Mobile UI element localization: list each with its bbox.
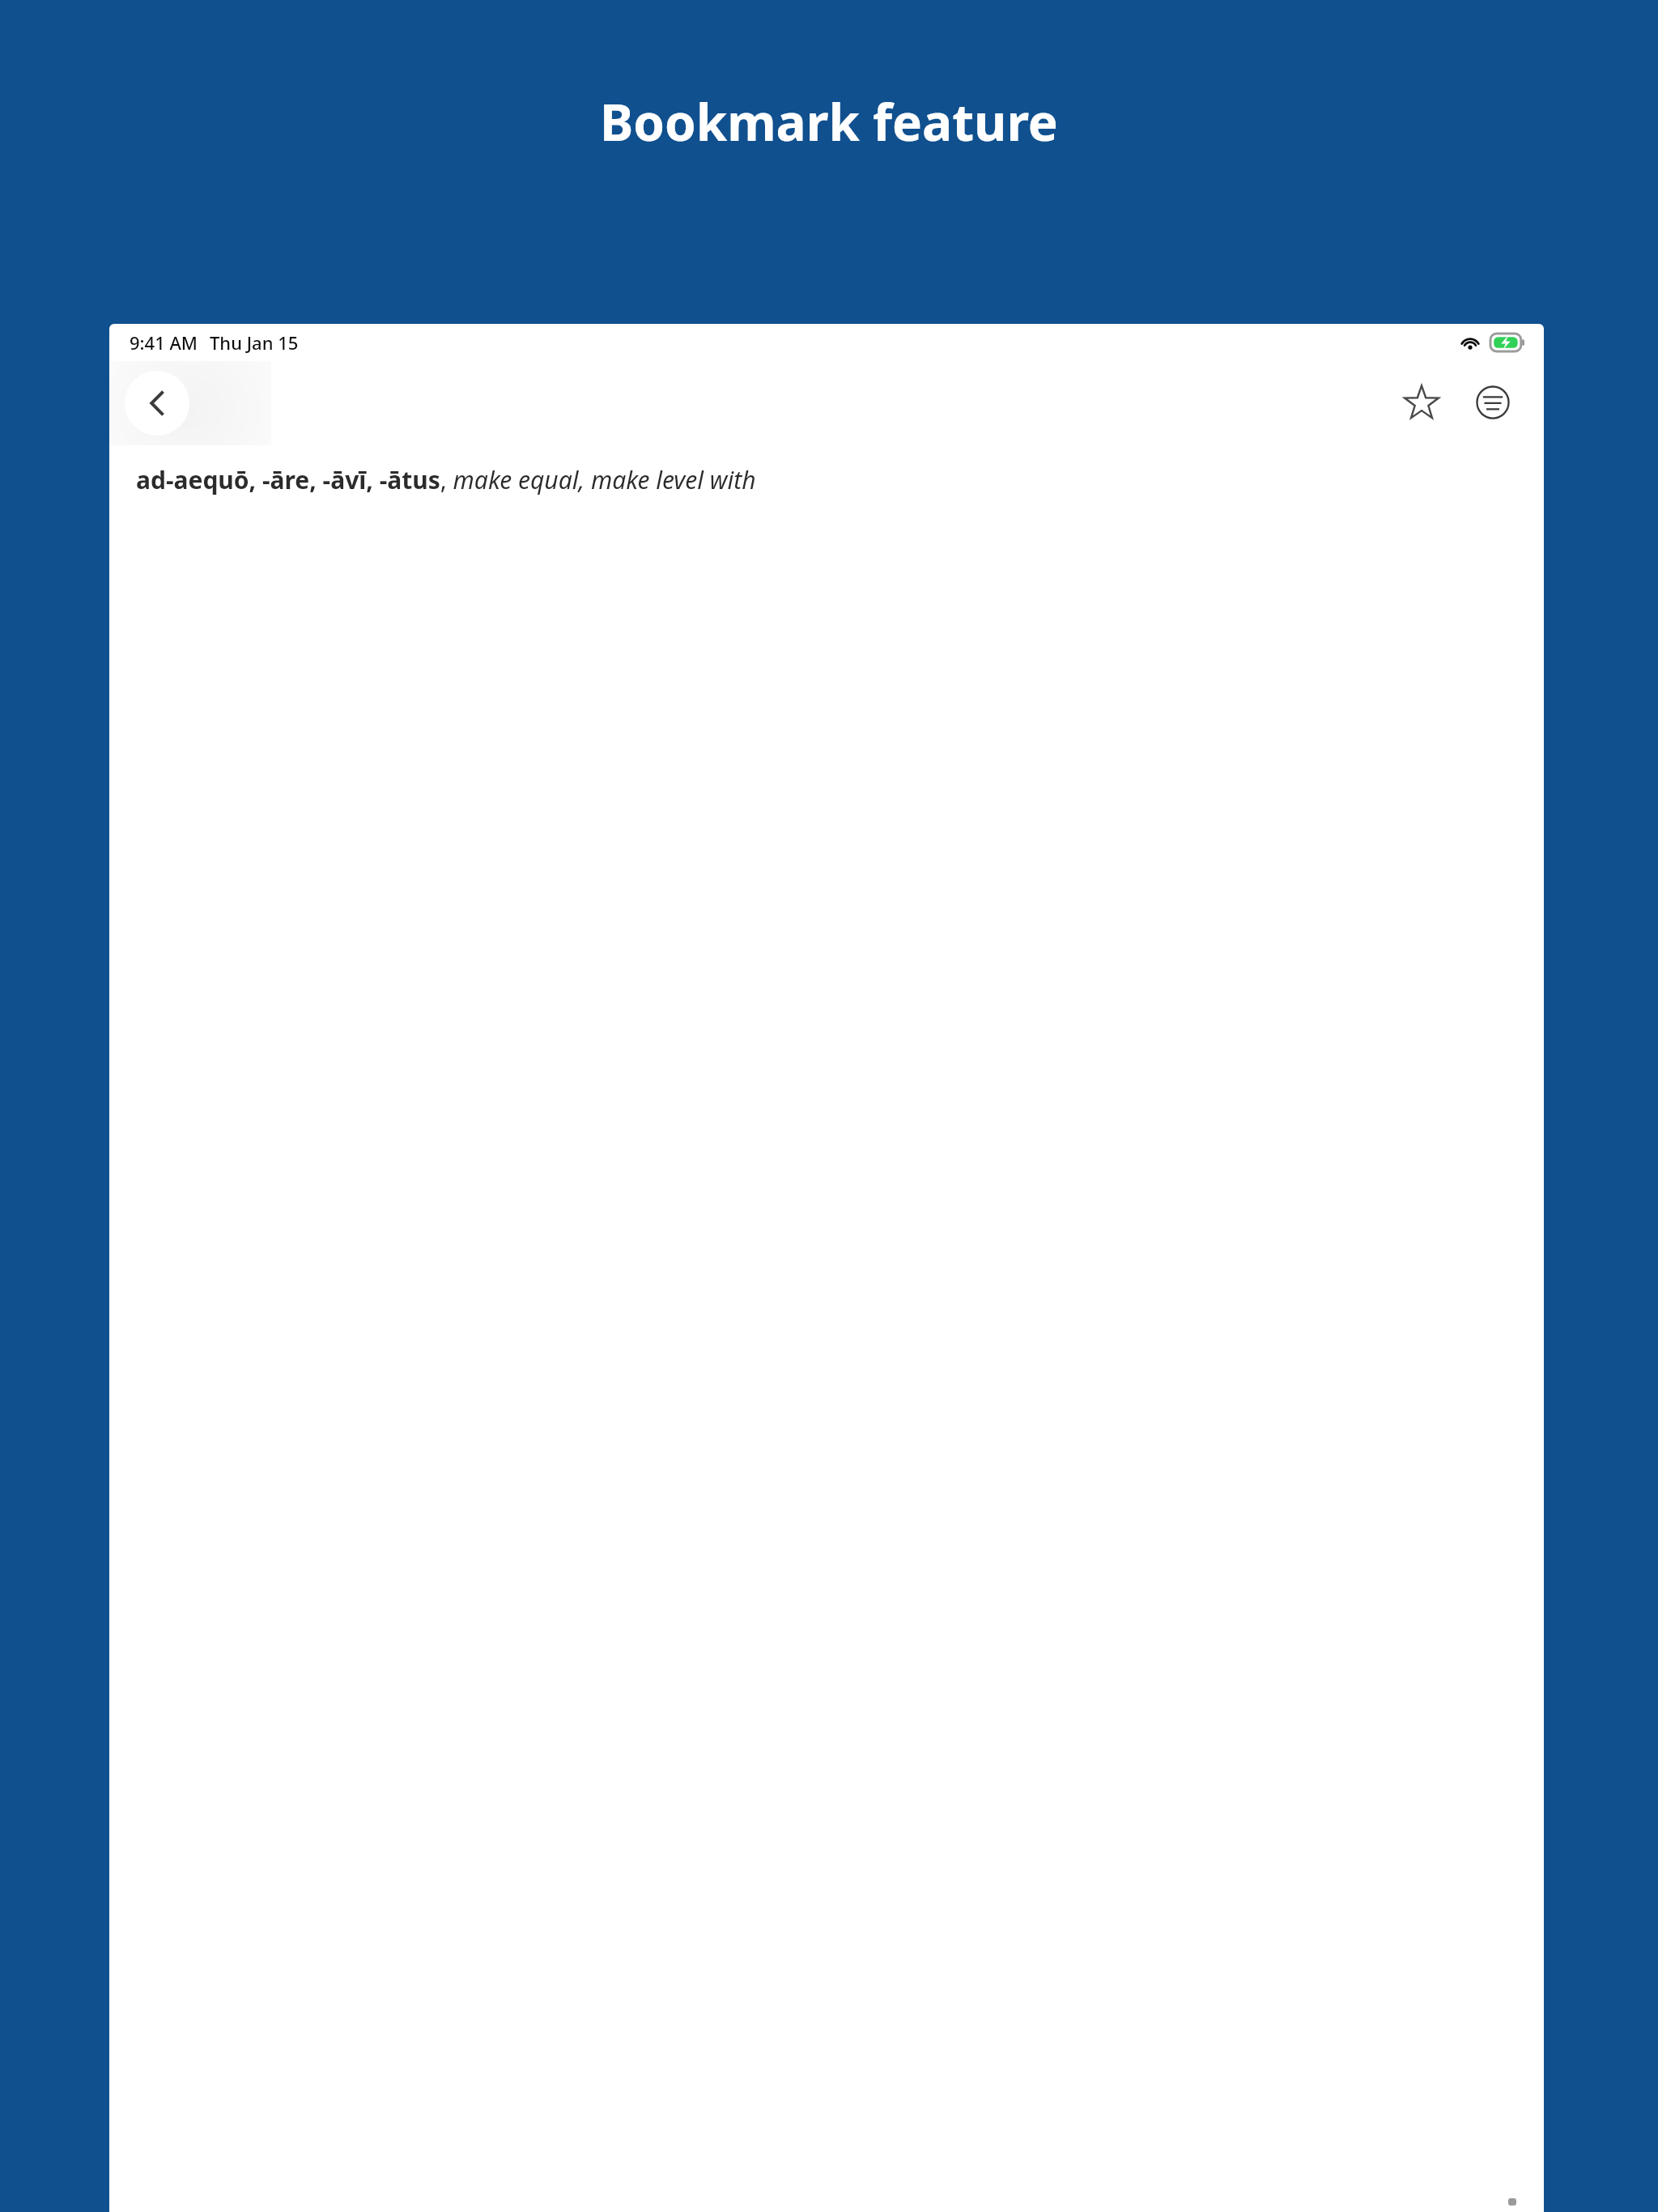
button[interactable]: ad-aequō, -āre, -āvī, -ātus, make equal,…	[136, 463, 1538, 496]
button[interactable]: Menu	[1457, 371, 1528, 434]
staticText: 9:41 AM	[130, 330, 198, 355]
button[interactable]: Back	[125, 371, 189, 436]
staticText: Bookmark feature	[600, 87, 1058, 155]
staticText: Thu Jan 15	[210, 330, 299, 355]
button[interactable]: Bookmark	[1386, 371, 1457, 434]
staticText: ad-aequō, -āre, -āvī, -ātus, make equal,…	[136, 463, 756, 496]
